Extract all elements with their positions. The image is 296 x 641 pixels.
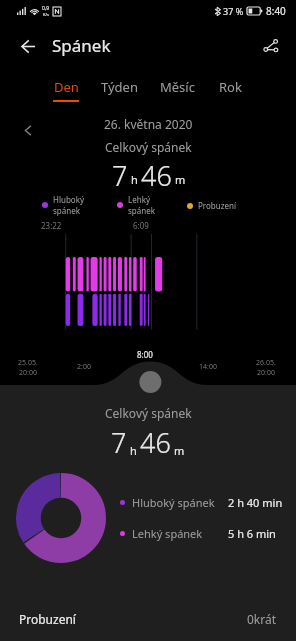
- staticText: 8:40: [266, 4, 286, 18]
- staticText: Celkový spánek: [105, 139, 192, 155]
- staticText: 6:09: [133, 220, 149, 231]
- staticText: 2:00: [77, 362, 91, 372]
- staticText: Měsíc: [160, 78, 195, 96]
- staticText: 46: [140, 424, 171, 461]
- staticText: m: [175, 172, 186, 187]
- staticText: 46: [141, 157, 172, 190]
- staticText: spánek: [128, 205, 155, 216]
- staticText: m: [174, 443, 185, 458]
- button[interactable]: Back: [8, 28, 44, 64]
- staticText: 8:00: [137, 349, 153, 360]
- staticText: Spánek: [52, 34, 111, 57]
- staticText: Den: [54, 78, 79, 96]
- staticText: Probuzení: [19, 611, 76, 627]
- staticText: 20:00: [257, 368, 275, 378]
- staticText: h: [131, 172, 138, 187]
- button[interactable]: Den: [42, 74, 90, 106]
- staticText: Hluboký spánek: [132, 495, 215, 510]
- staticText: K/s: [43, 12, 49, 17]
- staticText: 7: [111, 424, 127, 461]
- staticText: 5 h 6 min: [228, 526, 276, 541]
- staticText: Lehký spánek: [132, 526, 203, 541]
- staticText: Rok: [219, 78, 242, 96]
- staticText: 23:22: [41, 220, 62, 231]
- button[interactable]: Rok: [206, 74, 254, 106]
- staticText: 0,9: [42, 5, 50, 12]
- staticText: 20:00: [19, 368, 37, 378]
- staticText: 37 %: [223, 5, 244, 17]
- staticText: Celkový spánek: [105, 405, 192, 421]
- staticText: Hluboký: [53, 194, 85, 205]
- staticText: 25.05.: [18, 358, 38, 368]
- staticText: 7: [112, 157, 128, 190]
- staticText: 14:00: [199, 362, 217, 372]
- staticText: h: [130, 443, 137, 458]
- staticText: 26. května 2020: [104, 116, 193, 132]
- button[interactable]: Probuzení: [0, 599, 296, 638]
- button[interactable]: Měsíc: [149, 74, 206, 106]
- staticText: Lehký: [128, 194, 150, 205]
- button[interactable]: Týden: [90, 74, 149, 106]
- staticText: 2 h 40 min: [228, 495, 283, 510]
- staticText: spánek: [53, 205, 80, 216]
- button[interactable]: Previous day: [14, 116, 42, 144]
- staticText: Probuzení: [198, 200, 236, 211]
- staticText: 0krát: [247, 611, 277, 627]
- staticText: 26.05.: [256, 358, 276, 368]
- button[interactable]: Share: [252, 28, 288, 64]
- staticText: Týden: [101, 78, 138, 96]
